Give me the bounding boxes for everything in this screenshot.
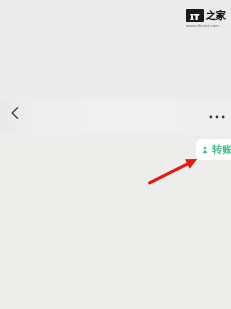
staticText: IT: [190, 10, 200, 22]
staticText: 之家: [206, 9, 226, 22]
staticText: 转账: [212, 143, 231, 156]
button[interactable]: More options: [205, 105, 229, 129]
button[interactable]: 转账: [196, 139, 231, 160]
staticText: www.ithome.com: [186, 23, 219, 28]
button[interactable]: Back: [2, 100, 28, 126]
